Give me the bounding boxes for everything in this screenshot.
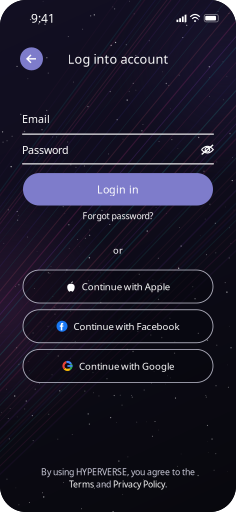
- staticText: Log into account: [67, 50, 168, 67]
- staticText: and: [94, 478, 113, 490]
- staticText: Terms: [69, 478, 94, 490]
- button[interactable]: Continue with Facebook: [23, 310, 213, 343]
- staticText: Email: [22, 112, 50, 126]
- button[interactable]: Continue with Apple: [23, 270, 213, 303]
- button[interactable]: Terms: [69, 478, 94, 490]
- staticText: By using HYPERVERSE, you agree to the: [41, 466, 195, 478]
- button[interactable]: Show password: [201, 144, 214, 155]
- staticText: Login in: [97, 182, 139, 196]
- button[interactable]: Continue with Google: [23, 349, 213, 382]
- staticText: Continue with Facebook: [73, 320, 179, 333]
- button[interactable]: Forgot password?: [82, 210, 153, 222]
- button[interactable]: Back: [20, 47, 43, 70]
- button[interactable]: Login in: [23, 173, 213, 205]
- staticText: .: [165, 478, 167, 490]
- staticText: or: [113, 244, 123, 256]
- staticText: Forgot password?: [82, 210, 153, 222]
- staticText: Password: [22, 142, 69, 157]
- staticText: 9:41: [31, 10, 55, 26]
- staticText: Continue with Apple: [82, 280, 170, 293]
- button[interactable]: Privacy Policy: [113, 478, 165, 490]
- staticText: Privacy Policy: [113, 478, 165, 490]
- staticText: Continue with Google: [79, 359, 174, 372]
